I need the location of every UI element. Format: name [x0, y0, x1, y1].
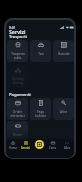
staticText: Mobility sharing [12, 77, 24, 85]
staticText: Paga bollette [35, 110, 46, 118]
staticText: Taxi [38, 52, 44, 56]
button[interactable]: Barcode [53, 40, 74, 62]
staticText: Pagamenti [9, 92, 31, 98]
button[interactable]: Scansiona codice [35, 140, 44, 149]
staticText: Servizi [9, 28, 26, 35]
staticText: Trasporti [9, 34, 27, 40]
staticText: Ordini elettronici [10, 110, 25, 118]
staticText: Altro [64, 146, 71, 150]
button[interactable]: Taxi [30, 40, 51, 62]
button[interactable]: Servizi [19, 141, 32, 150]
button[interactable]: Mobility sharing [7, 65, 28, 87]
button[interactable]: Carta [46, 141, 60, 150]
button[interactable]: Altro [60, 141, 74, 150]
staticText: Carta [49, 146, 57, 150]
staticText: Altro [60, 110, 67, 114]
button[interactable]: Trasporto pubb. [7, 40, 28, 62]
staticText: Giochi [13, 133, 22, 137]
staticText: Servizi [21, 146, 30, 150]
button[interactable]: Altro [53, 98, 74, 120]
staticText: Barcode [58, 52, 70, 56]
button[interactable]: Home [6, 141, 19, 150]
staticText: Trasporto pubb. [11, 52, 25, 60]
staticText: 9:41 [9, 25, 16, 29]
staticText: Home [9, 146, 17, 150]
button[interactable]: Paga bollette [30, 98, 51, 120]
button[interactable]: Giochi [7, 121, 28, 143]
button[interactable]: Ordini elettronici [7, 98, 28, 120]
